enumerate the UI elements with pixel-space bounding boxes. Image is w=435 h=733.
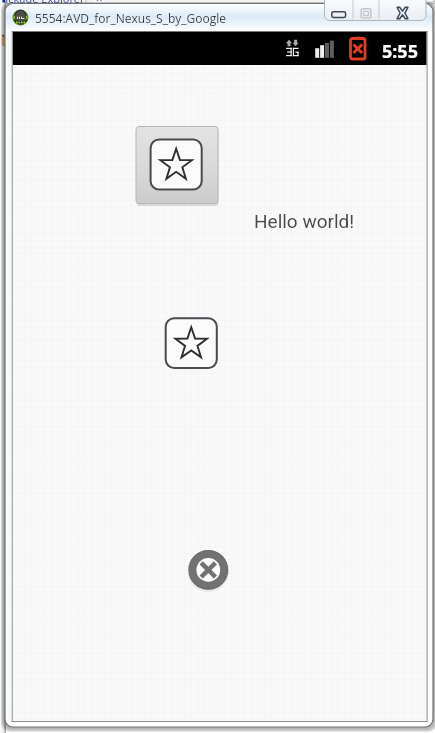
button[interactable]: Rate with star <box>136 126 219 204</box>
button[interactable]: Star <box>166 318 217 368</box>
button[interactable]: Close <box>190 551 229 590</box>
